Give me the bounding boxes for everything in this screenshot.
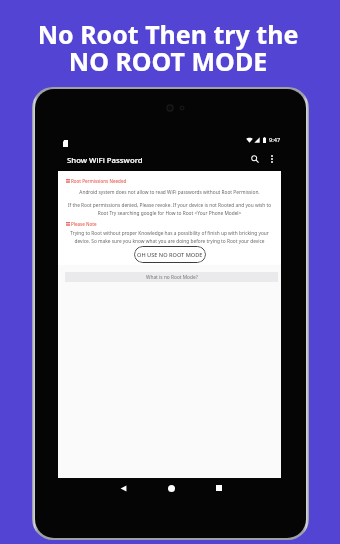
button[interactable]: Home bbox=[162, 479, 180, 497]
staticText: Root Permissions Needed bbox=[71, 178, 127, 184]
button[interactable]: Recents bbox=[210, 479, 228, 497]
button[interactable]: Search bbox=[247, 151, 263, 167]
staticText: 9:47 bbox=[269, 136, 281, 144]
staticText: No Root Then try the NO ROOT MODE bbox=[0, 17, 338, 79]
staticText: What is no Root Mode? bbox=[146, 274, 198, 281]
staticText: OH USE NO ROOT MODE bbox=[137, 251, 203, 259]
button[interactable]: OH USE NO ROOT MODE bbox=[134, 246, 206, 263]
staticText: Trying to Root without proper Knowledge … bbox=[66, 230, 273, 244]
button[interactable]: Back bbox=[114, 479, 132, 497]
button[interactable]: More options bbox=[264, 151, 280, 167]
staticText: If the Root permissions denied, Please r… bbox=[66, 202, 273, 216]
button[interactable]: What is no Root Mode? bbox=[65, 272, 278, 282]
staticText: Android system does not allow to read Wi… bbox=[66, 189, 273, 196]
staticText: Show WiFi Password bbox=[67, 155, 143, 166]
staticText: Please Note bbox=[71, 221, 97, 227]
